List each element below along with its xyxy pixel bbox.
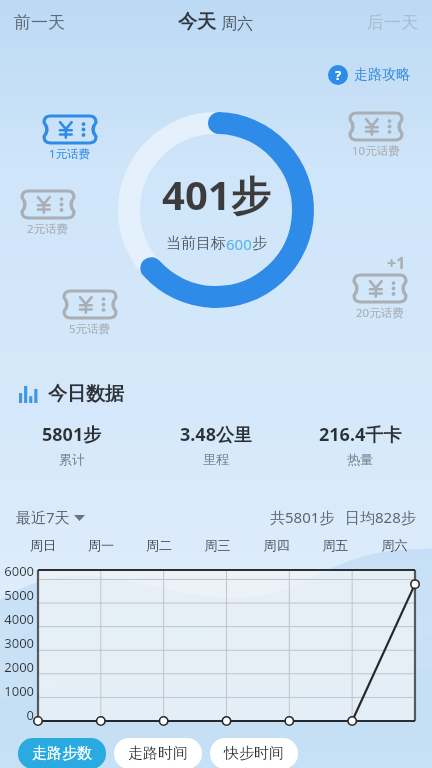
button[interactable]: 5元话费 xyxy=(62,290,118,337)
staticText: 快步时间 xyxy=(224,744,284,763)
staticText: 今天 xyxy=(178,10,216,34)
staticText: 20元话费 xyxy=(356,305,404,321)
staticText: 3000 xyxy=(0,634,34,652)
staticText: 当前目标 xyxy=(166,234,226,253)
button[interactable]: 10元话费 xyxy=(348,112,404,159)
staticText: 1元话费 xyxy=(49,146,91,162)
staticText: 最近7天 xyxy=(16,507,70,527)
button[interactable]: 最近7天 xyxy=(16,505,85,529)
staticText: 前一天 xyxy=(14,12,65,33)
other: 帮助 xyxy=(328,65,348,85)
staticText: 401步 xyxy=(162,167,271,222)
staticText: 4000 xyxy=(0,610,34,628)
staticText: 步 xyxy=(252,234,267,253)
staticText: 走路时间 xyxy=(128,744,188,763)
staticText: 3.48公里 xyxy=(180,422,252,447)
staticText: 今日数据 xyxy=(48,382,124,406)
button[interactable]: 前一天 xyxy=(0,8,73,37)
button[interactable]: 帮助 xyxy=(324,62,414,88)
staticText: 周三 xyxy=(188,537,247,553)
button[interactable]: 走路步数 xyxy=(18,738,106,768)
staticText: 里程 xyxy=(203,451,229,467)
staticText: 6000 xyxy=(0,562,34,580)
staticText: 5000 xyxy=(0,586,34,604)
staticText: 走路攻略 xyxy=(354,66,410,84)
button[interactable]: 快步时间 xyxy=(210,738,298,768)
staticText: 走路步数 xyxy=(32,744,92,763)
button[interactable]: 走路时间 xyxy=(114,738,202,768)
staticText: 后一天 xyxy=(367,12,418,33)
staticText: 周六 xyxy=(221,14,253,34)
staticText: 5801步 xyxy=(42,422,102,447)
staticText: 2000 xyxy=(0,658,34,676)
staticText: 周六 xyxy=(365,537,424,553)
staticText: 0 xyxy=(0,706,34,724)
staticText: ? xyxy=(335,66,342,84)
staticText: 热量 xyxy=(347,451,373,467)
staticText: 累计 xyxy=(59,451,85,467)
button[interactable]: 1元话费 xyxy=(42,115,98,162)
staticText: 周四 xyxy=(247,537,306,553)
staticText: 2元话费 xyxy=(27,221,69,237)
button[interactable]: +1 xyxy=(352,252,408,321)
staticText: 周一 xyxy=(72,537,130,553)
button[interactable]: 后一天 xyxy=(359,8,432,37)
staticText: 1000 xyxy=(0,682,34,700)
staticText: 600 xyxy=(226,234,252,254)
staticText: 共5801步 xyxy=(270,507,335,527)
staticText: 周二 xyxy=(130,537,188,553)
staticText: 5元话费 xyxy=(69,321,111,337)
staticText: 216.4千卡 xyxy=(319,422,402,447)
staticText: 10元话费 xyxy=(352,143,400,159)
button[interactable]: 2元话费 xyxy=(20,190,76,237)
staticText: 周日 xyxy=(14,537,72,553)
staticText: 日均828步 xyxy=(345,507,416,527)
staticText: +1 xyxy=(387,252,406,274)
staticText: 周五 xyxy=(306,537,365,553)
